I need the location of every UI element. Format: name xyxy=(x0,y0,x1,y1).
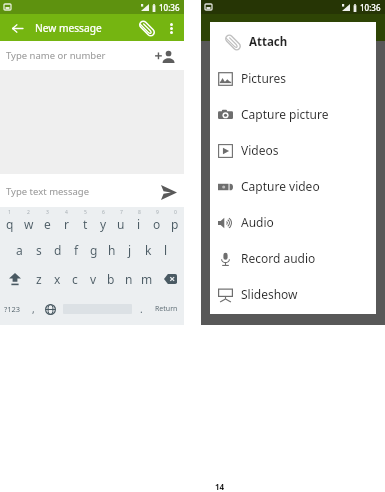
staticText: Attach xyxy=(249,34,288,50)
button[interactable]: Pictures xyxy=(210,60,376,96)
button[interactable] xyxy=(60,293,133,325)
button[interactable]: c xyxy=(66,264,84,293)
staticText: 5 xyxy=(84,209,87,216)
staticText: r xyxy=(64,216,69,232)
button[interactable]: , xyxy=(25,293,41,325)
button[interactable]: 0 xyxy=(166,207,184,235)
button[interactable]: g xyxy=(85,235,103,264)
button[interactable]: Change language xyxy=(41,293,60,325)
button[interactable]: Attach xyxy=(138,19,156,37)
button[interactable]: j xyxy=(121,235,139,264)
button[interactable]: Record audio xyxy=(210,240,376,276)
staticText: 6 xyxy=(102,209,105,216)
staticText: y xyxy=(100,216,107,232)
staticText: Slideshow xyxy=(241,286,298,302)
staticText: a xyxy=(16,242,23,258)
button[interactable]: f xyxy=(67,235,85,264)
button[interactable]: 8 xyxy=(130,207,148,235)
staticText: Return xyxy=(155,304,178,314)
staticText: New message xyxy=(35,21,102,35)
staticText: Capture video xyxy=(241,178,320,194)
button[interactable]: Slideshow xyxy=(210,276,376,312)
staticText: 10:36 xyxy=(360,2,381,13)
staticText: z xyxy=(36,271,42,287)
staticText: c xyxy=(72,271,78,287)
staticText: p xyxy=(171,216,179,232)
staticText: x xyxy=(54,271,61,287)
staticText: Type name or number xyxy=(6,49,106,62)
button[interactable]: Shift xyxy=(0,264,29,293)
staticText: ?123 xyxy=(4,304,21,314)
button[interactable]: z xyxy=(29,264,48,293)
staticText: j xyxy=(128,242,132,258)
staticText: o xyxy=(153,216,161,232)
staticText: s xyxy=(36,242,42,258)
staticText: 9 xyxy=(156,209,159,216)
button[interactable]: Capture video xyxy=(210,168,376,204)
button[interactable]: Return xyxy=(149,293,184,325)
staticText: q xyxy=(6,216,14,232)
button[interactable]: v xyxy=(84,264,102,293)
staticText: i xyxy=(137,216,141,232)
button[interactable]: Attach xyxy=(210,24,376,60)
staticText: Videos xyxy=(241,142,279,158)
staticText: m xyxy=(141,271,153,287)
button[interactable]: d xyxy=(48,235,67,264)
button[interactable]: Back xyxy=(8,19,26,37)
staticText: Audio xyxy=(241,214,274,230)
staticText: v xyxy=(90,271,97,287)
button[interactable]: 6 xyxy=(94,207,112,235)
button[interactable]: 9 xyxy=(148,207,166,235)
staticText: 10:36 xyxy=(159,2,180,13)
staticText: 7 xyxy=(120,209,123,216)
button[interactable]: More options xyxy=(163,20,179,36)
staticText: w xyxy=(24,216,34,232)
staticText: b xyxy=(107,271,115,287)
button[interactable]: . xyxy=(133,293,149,325)
button[interactable]: a xyxy=(10,235,29,264)
staticText: k xyxy=(145,242,152,258)
staticText: 2 xyxy=(27,209,30,216)
staticText: g xyxy=(90,242,98,258)
button[interactable]: 2 xyxy=(19,207,38,235)
staticText: d xyxy=(54,242,62,258)
staticText: 14 xyxy=(215,481,225,492)
button[interactable]: h xyxy=(103,235,121,264)
staticText: Capture picture xyxy=(241,106,329,122)
button[interactable]: k xyxy=(139,235,157,264)
button[interactable]: 1 xyxy=(0,207,19,235)
button[interactable]: 3 xyxy=(38,207,57,235)
button[interactable]: ?123 xyxy=(0,293,25,325)
button[interactable]: l xyxy=(157,235,175,264)
button[interactable]: 7 xyxy=(112,207,130,235)
staticText: l xyxy=(164,242,168,258)
button[interactable]: Add person xyxy=(152,45,174,67)
button[interactable]: b xyxy=(102,264,120,293)
button[interactable]: Videos xyxy=(210,132,376,168)
staticText: 4 xyxy=(65,209,68,216)
button[interactable]: Audio xyxy=(210,204,376,240)
button[interactable]: 4 xyxy=(57,207,76,235)
button[interactable]: Capture picture xyxy=(210,96,376,132)
staticText: , xyxy=(32,302,35,316)
staticText: e xyxy=(44,216,51,232)
staticText: 8 xyxy=(138,209,141,216)
staticText: Type text message xyxy=(6,185,90,198)
button[interactable]: s xyxy=(29,235,48,264)
staticText: Record audio xyxy=(241,250,316,266)
button[interactable]: Backspace xyxy=(156,264,184,293)
staticText: 3 xyxy=(46,209,49,216)
staticText: n xyxy=(125,271,133,287)
button[interactable]: n xyxy=(120,264,138,293)
staticText: h xyxy=(108,242,116,258)
button[interactable]: m xyxy=(138,264,156,293)
staticText: t xyxy=(83,216,88,232)
staticText: . xyxy=(140,302,143,316)
staticText: Pictures xyxy=(241,70,287,86)
staticText: 0 xyxy=(174,209,177,216)
staticText: f xyxy=(74,242,79,258)
staticText: 1 xyxy=(8,209,11,216)
button[interactable]: 5 xyxy=(76,207,94,235)
button[interactable]: x xyxy=(48,264,66,293)
button[interactable]: Send xyxy=(157,182,181,202)
